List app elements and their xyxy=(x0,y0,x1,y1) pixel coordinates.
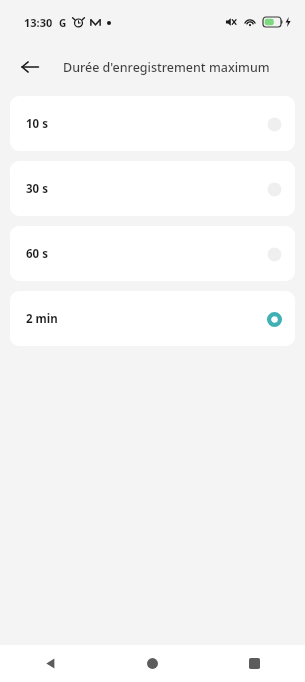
button[interactable]: 60 s xyxy=(10,226,295,281)
staticText: 2 min xyxy=(26,311,58,327)
button[interactable]: Back xyxy=(0,645,101,682)
button[interactable]: 2 min xyxy=(10,291,295,346)
button[interactable]: 10 s xyxy=(10,96,295,151)
staticText: 60 s xyxy=(26,246,48,262)
staticText: 10 s xyxy=(26,116,48,132)
staticText: G xyxy=(59,16,67,30)
button[interactable]: 30 s xyxy=(10,161,295,216)
button[interactable]: Recent apps xyxy=(203,645,305,682)
button[interactable]: Back xyxy=(12,49,48,85)
staticText: Durée d'enregistrement maximum xyxy=(63,59,270,76)
staticText: 30 s xyxy=(26,181,48,197)
staticText: 13:30 xyxy=(24,15,53,30)
button[interactable]: Home xyxy=(101,645,203,682)
